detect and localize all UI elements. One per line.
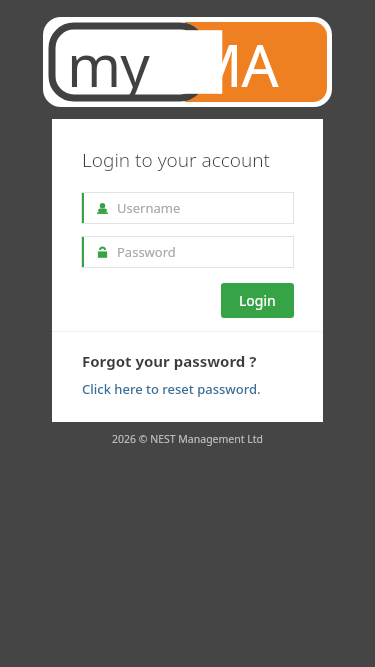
staticText: Password [117, 243, 176, 261]
staticText: Forgot your password ? [82, 351, 257, 371]
button[interactable]: Login [221, 283, 294, 318]
staticText: Login [239, 291, 276, 310]
button[interactable]: Click here to reset password. [82, 380, 261, 398]
staticText: Login to your account [82, 147, 271, 173]
other: Password [97, 247, 108, 258]
staticText: Click here to reset password. [82, 380, 261, 398]
staticText: Username [117, 199, 181, 217]
button[interactable]: Password [82, 237, 293, 267]
button[interactable]: Username [82, 193, 293, 223]
staticText: 2026 © NEST Management Ltd [52, 432, 323, 446]
staticText: MA [190, 25, 278, 104]
staticText: my [67, 25, 149, 104]
other: Username [97, 203, 108, 214]
